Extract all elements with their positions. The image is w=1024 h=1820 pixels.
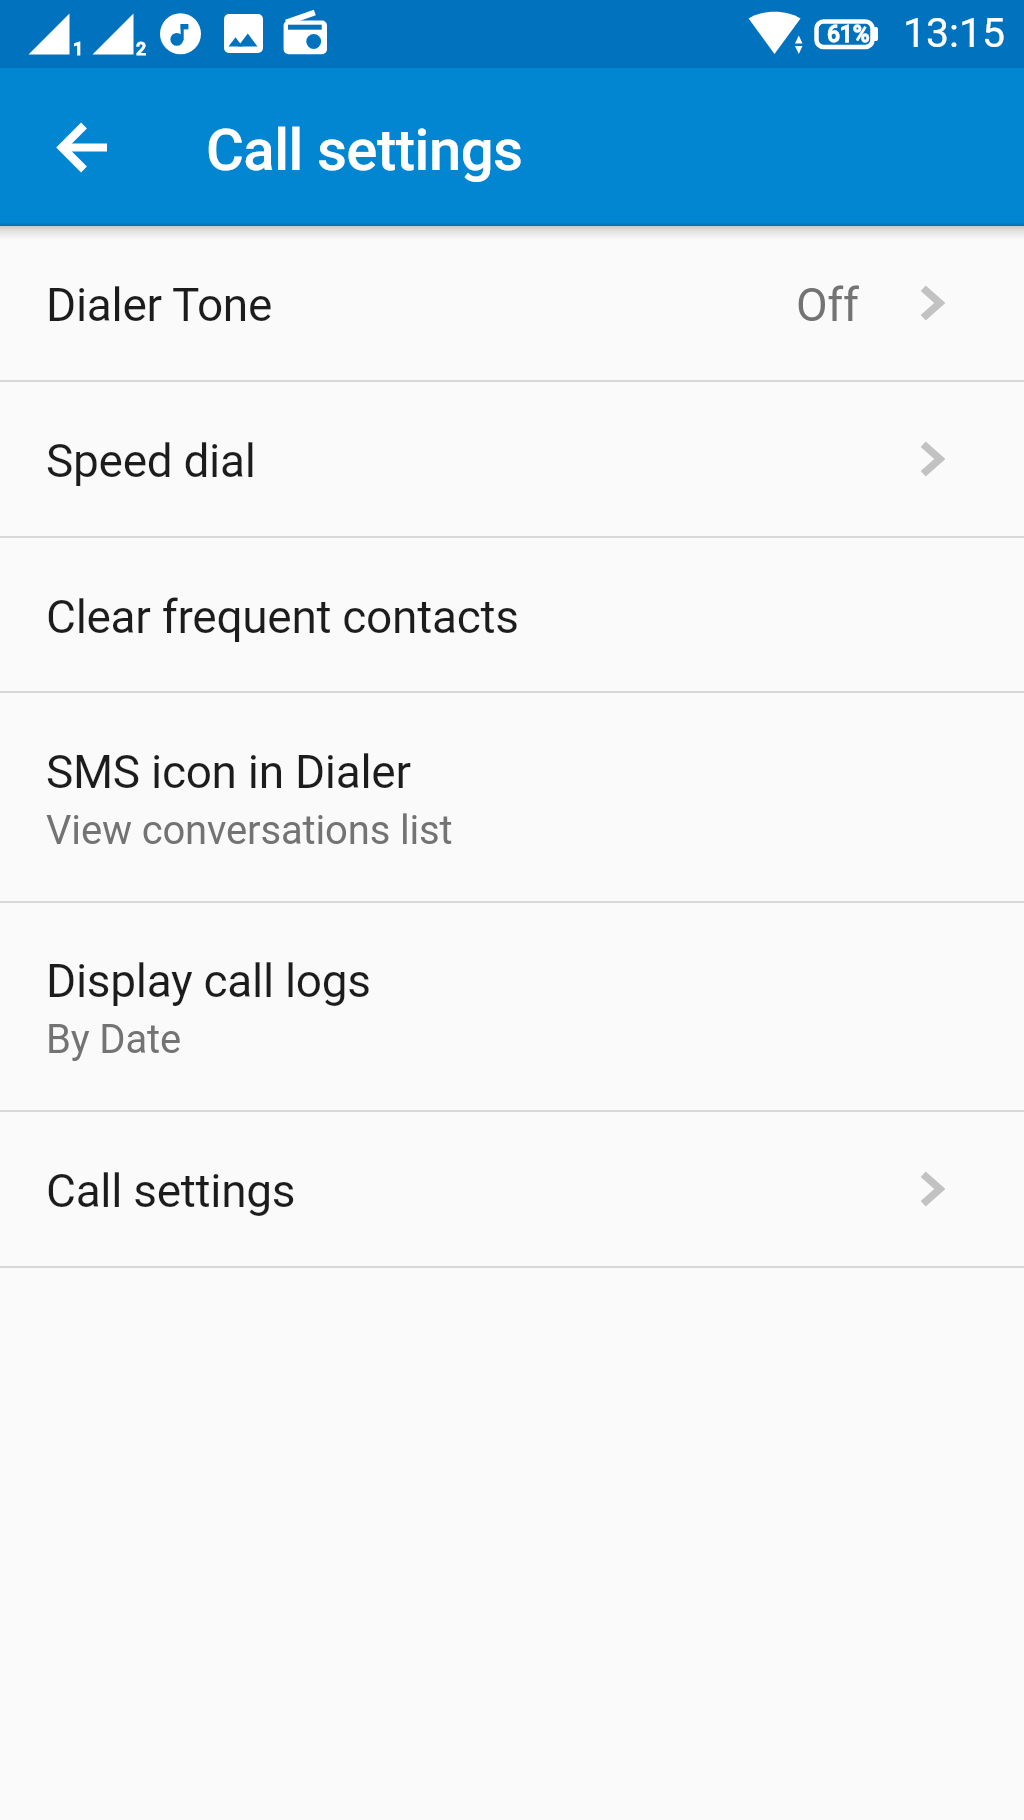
button[interactable]: SMS icon in Dialer [0,693,1024,901]
staticText: Off [796,278,859,332]
staticText: 2 [136,38,147,59]
button[interactable]: Navigate up [35,99,131,195]
staticText: Dialer Tone [46,278,273,332]
button[interactable]: Clear frequent contacts [0,538,1024,691]
staticText: Call settings [46,1164,296,1218]
staticText: 61% [827,21,870,48]
button[interactable]: Call settings [0,1112,1024,1266]
staticText: 1 [73,38,84,59]
staticText: View conversations list [46,807,453,854]
staticText: Display call logs [46,954,371,1008]
button[interactable]: Speed dial [0,382,1024,536]
staticText: By Date [46,1016,182,1063]
staticText: Speed dial [46,434,256,488]
button[interactable]: Display call logs [0,903,1024,1110]
staticText: Clear frequent contacts [46,590,519,644]
staticText: SMS icon in Dialer [46,745,411,799]
button[interactable]: Dialer Tone [0,226,1024,380]
staticText: 13:15 [903,9,1006,57]
staticText: Call settings [206,116,523,184]
